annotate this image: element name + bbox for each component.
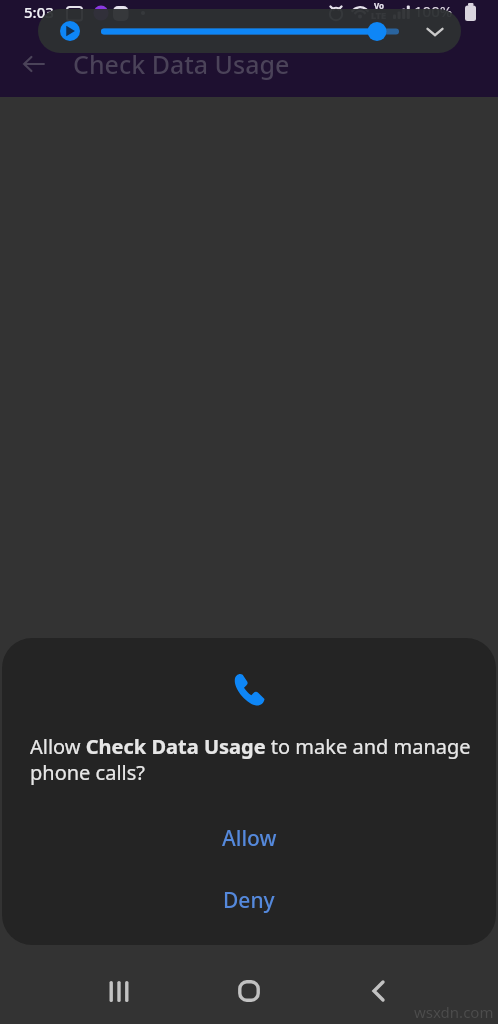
staticText: 100% bbox=[414, 1, 453, 21]
button[interactable]: Home bbox=[209, 958, 289, 1024]
button[interactable]: Collapse bbox=[413, 9, 457, 53]
button[interactable]: Deny bbox=[2, 874, 496, 926]
button[interactable]: Recent apps bbox=[79, 958, 159, 1024]
staticText: Deny bbox=[223, 886, 275, 915]
button[interactable]: Back bbox=[338, 958, 418, 1024]
staticText: Vo bbox=[374, 0, 385, 11]
staticText: Allow bbox=[222, 824, 277, 853]
button[interactable]: Play bbox=[60, 21, 80, 41]
button[interactable]: Allow bbox=[2, 812, 496, 864]
staticText: Check Data Usage bbox=[73, 47, 290, 81]
staticText: 5:03 bbox=[24, 2, 54, 22]
button[interactable]: Media notification bbox=[38, 9, 461, 53]
staticText: wsxdn.com bbox=[414, 1002, 494, 1022]
staticText: LTE bbox=[371, 9, 387, 21]
staticText: Allow Check Data Usage to make and manag… bbox=[30, 733, 482, 786]
button[interactable]: Navigate up bbox=[12, 42, 56, 86]
